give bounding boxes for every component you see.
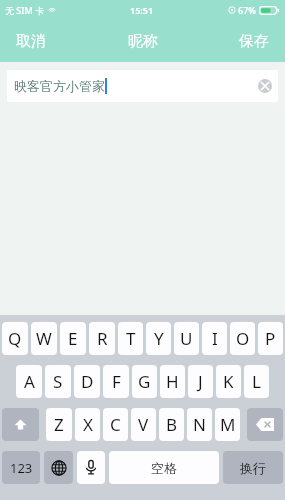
staticText: A <box>24 370 35 393</box>
staticText: 15:51 <box>130 4 154 16</box>
button[interactable]: S <box>45 365 71 398</box>
staticText: V <box>138 413 149 436</box>
button[interactable]: R <box>89 322 115 355</box>
button[interactable]: N <box>187 408 212 441</box>
staticText: T <box>126 327 136 350</box>
button[interactable]: C <box>103 408 128 441</box>
staticText: H <box>166 370 179 393</box>
button[interactable]: G <box>132 365 157 398</box>
button[interactable]: T <box>118 322 143 355</box>
staticText: 换行 <box>240 460 266 476</box>
button[interactable]: Shift <box>2 408 39 441</box>
staticText: E <box>68 327 78 350</box>
staticText: G <box>138 370 151 393</box>
staticText: 昵称 <box>128 32 158 51</box>
button[interactable]: U <box>174 322 199 355</box>
button[interactable]: F <box>103 365 129 398</box>
staticText: 空格 <box>151 460 177 476</box>
button[interactable]: 换行 <box>223 451 283 484</box>
staticText: X <box>83 413 93 436</box>
staticText: N <box>193 413 206 436</box>
staticText: B <box>166 413 178 436</box>
staticText: J <box>198 370 203 393</box>
button[interactable]: Z <box>46 408 72 441</box>
staticText: F <box>112 370 121 393</box>
button[interactable]: Y <box>146 322 171 355</box>
staticText: D <box>81 370 94 393</box>
button[interactable]: D <box>74 365 100 398</box>
staticText: W <box>36 327 52 350</box>
staticText: 保存 <box>239 32 269 51</box>
button[interactable]: 取消 <box>0 20 62 62</box>
staticText: Z <box>54 413 64 436</box>
button[interactable]: Switch keyboard <box>44 451 73 484</box>
button[interactable]: Q <box>2 322 28 355</box>
staticText: U <box>180 327 193 350</box>
button[interactable]: J <box>188 365 213 398</box>
staticText: S <box>53 370 63 393</box>
button[interactable]: X <box>75 408 100 441</box>
button[interactable]: P <box>258 322 283 355</box>
button[interactable]: 映客官方小管家 <box>7 70 278 102</box>
button[interactable]: I <box>202 322 227 355</box>
staticText: 无 SIM 卡 <box>5 4 45 16</box>
staticText: Q <box>8 327 22 350</box>
staticText: C <box>110 413 121 436</box>
button[interactable]: E <box>60 322 86 355</box>
staticText: M <box>220 413 236 436</box>
staticText: O <box>236 327 250 350</box>
button[interactable]: Backspace <box>247 408 283 441</box>
button[interactable]: H <box>160 365 185 398</box>
button[interactable]: L <box>244 365 269 398</box>
staticText: Y <box>154 327 164 350</box>
staticText: 映客官方小管家 <box>14 78 105 94</box>
staticText: L <box>252 370 261 393</box>
button[interactable]: V <box>131 408 156 441</box>
button[interactable]: M <box>215 408 240 441</box>
button[interactable]: Clear text <box>258 79 272 93</box>
button[interactable]: A <box>16 365 42 398</box>
button[interactable]: W <box>31 322 57 355</box>
button[interactable]: B <box>159 408 184 441</box>
button[interactable]: 123 <box>2 451 40 484</box>
staticText: 取消 <box>16 32 46 51</box>
button[interactable]: K <box>216 365 241 398</box>
staticText: I <box>212 327 218 350</box>
staticText: K <box>223 370 234 393</box>
button[interactable]: Voice input <box>77 451 105 484</box>
button[interactable]: O <box>230 322 255 355</box>
button[interactable]: 空格 <box>109 451 219 484</box>
staticText: R <box>97 327 108 350</box>
staticText: 123 <box>10 459 33 477</box>
staticText: P <box>265 327 276 350</box>
staticText: 67% <box>238 4 256 16</box>
button[interactable]: 保存 <box>223 20 285 62</box>
